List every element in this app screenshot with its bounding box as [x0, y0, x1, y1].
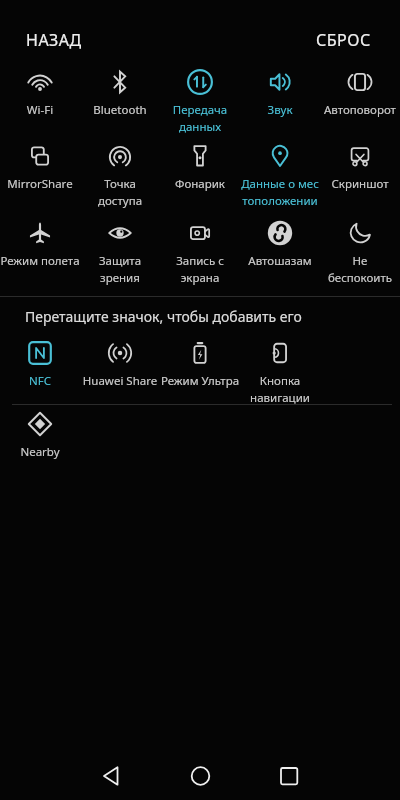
- button[interactable]: [262, 750, 316, 800]
- staticText: Передача данных: [160, 102, 240, 134]
- button[interactable]: Bluetooth: [80, 69, 160, 118]
- button[interactable]: NFC: [0, 340, 80, 389]
- button[interactable]: Передача данных: [160, 69, 240, 134]
- staticText: СБРОС: [316, 29, 371, 51]
- staticText: Защита зрения: [80, 253, 160, 285]
- button[interactable]: [173, 750, 227, 800]
- button[interactable]: Nearby: [0, 411, 80, 460]
- button[interactable]: Huawei Share: [80, 340, 160, 389]
- button[interactable]: Точка доступа: [80, 143, 160, 208]
- button[interactable]: Wi-Fi: [0, 69, 80, 118]
- staticText: Nearby: [0, 444, 80, 460]
- button[interactable]: Режим полета: [0, 220, 80, 269]
- staticText: Перетащите значок, чтобы добавить его: [25, 307, 302, 326]
- staticText: Режим полета: [0, 253, 80, 269]
- staticText: Звук: [240, 102, 320, 118]
- button[interactable]: MirrorShare: [0, 143, 80, 192]
- staticText: MirrorShare: [0, 176, 80, 192]
- staticText: НАЗАД: [26, 29, 82, 51]
- button[interactable]: Данные о мес тоположении: [240, 143, 320, 208]
- staticText: Wi-Fi: [0, 102, 80, 118]
- staticText: Не беспокоить: [320, 253, 400, 285]
- button[interactable]: Кнопка навигации: [240, 340, 320, 405]
- staticText: Запись с экрана: [160, 253, 240, 285]
- staticText: Скриншот: [320, 176, 400, 192]
- button[interactable]: Защита зрения: [80, 220, 160, 285]
- staticText: Точка доступа: [80, 176, 160, 208]
- button[interactable]: Автошазам: [240, 220, 320, 269]
- button[interactable]: НАЗАД: [14, 17, 94, 63]
- button[interactable]: Скриншот: [320, 143, 400, 192]
- button[interactable]: Фонарик: [160, 143, 240, 192]
- button[interactable]: Автоповорот: [320, 69, 400, 118]
- button[interactable]: СБРОС: [304, 17, 383, 63]
- button[interactable]: [84, 750, 138, 800]
- staticText: Кнопка навигации: [240, 373, 320, 405]
- staticText: Bluetooth: [80, 102, 160, 118]
- staticText: NFC: [0, 373, 80, 389]
- button[interactable]: Не беспокоить: [320, 220, 400, 285]
- button[interactable]: Запись с экрана: [160, 220, 240, 285]
- staticText: Фонарик: [160, 176, 240, 192]
- button[interactable]: Режим Ультра: [160, 340, 240, 389]
- staticText: Huawei Share: [80, 373, 160, 389]
- staticText: Автоповорот: [320, 102, 400, 118]
- staticText: Режим Ультра: [160, 373, 240, 389]
- button[interactable]: Звук: [240, 69, 320, 118]
- staticText: Данные о мес тоположении: [240, 176, 320, 208]
- staticText: Автошазам: [240, 253, 320, 269]
